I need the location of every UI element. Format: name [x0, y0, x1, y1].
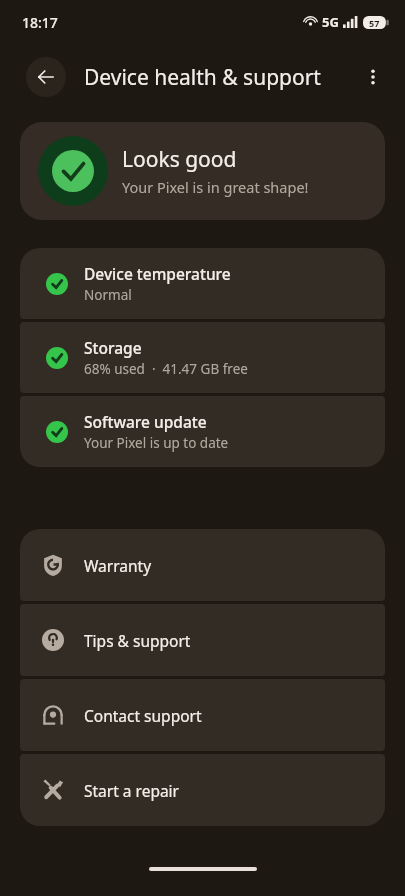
staticText: 18:17	[22, 13, 58, 32]
button[interactable]: Back	[26, 57, 66, 97]
staticText: 5G	[322, 13, 339, 31]
staticText: 68% used · 41.47 GB free	[84, 360, 248, 378]
button[interactable]: Contact support	[20, 679, 385, 751]
button[interactable]: More options	[351, 55, 395, 99]
staticText: Device health & support	[84, 63, 321, 92]
staticText: Normal	[84, 286, 132, 304]
staticText: Device temperature	[84, 263, 231, 284]
staticText: Warranty	[84, 555, 152, 576]
button[interactable]: Start a repair	[20, 754, 385, 826]
staticText: Start a repair	[84, 780, 180, 801]
staticText: Your Pixel is up to date	[84, 434, 229, 452]
staticText: Looks good	[122, 145, 237, 174]
staticText: Tips & support	[84, 630, 191, 651]
staticText: Storage	[84, 337, 142, 358]
staticText: Software update	[84, 411, 207, 432]
button[interactable]: Warranty	[20, 529, 385, 601]
staticText: Your Pixel is in great shape!	[122, 177, 309, 197]
button[interactable]: Tips & support	[20, 604, 385, 676]
button[interactable]: Software update	[20, 396, 385, 467]
staticText: 57	[369, 17, 380, 29]
button[interactable]: Device temperature	[20, 248, 385, 319]
button[interactable]: Storage	[20, 322, 385, 393]
staticText: Contact support	[84, 705, 202, 726]
button[interactable]: Looks good	[20, 122, 385, 220]
